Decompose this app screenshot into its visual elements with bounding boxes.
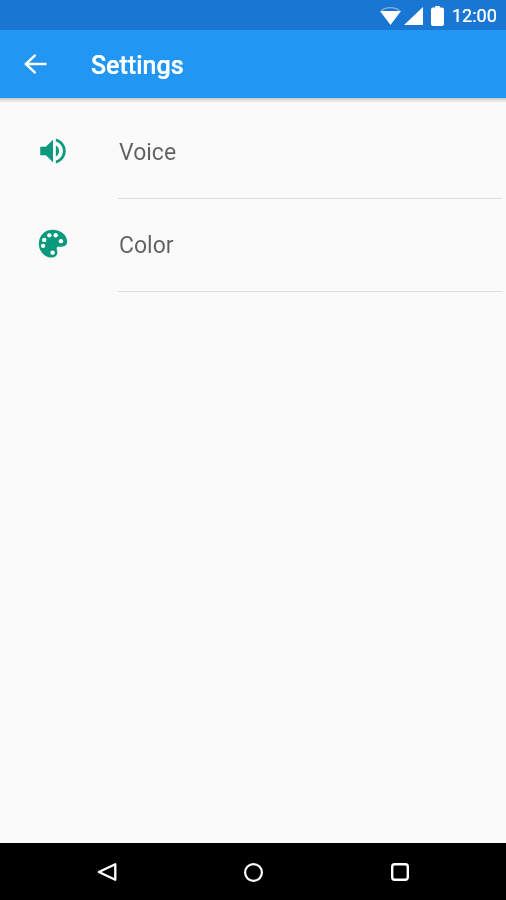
staticText: Settings: [91, 51, 184, 80]
button[interactable]: Back: [12, 40, 60, 88]
staticText: Voice: [119, 139, 177, 166]
staticText: Color: [119, 232, 174, 259]
staticText: 12:00: [452, 5, 497, 26]
button[interactable]: Back: [83, 848, 131, 896]
button[interactable]: Recent apps: [376, 848, 424, 896]
button[interactable]: Color: [0, 199, 506, 292]
button[interactable]: Voice: [0, 106, 506, 199]
button[interactable]: Home: [229, 848, 277, 896]
